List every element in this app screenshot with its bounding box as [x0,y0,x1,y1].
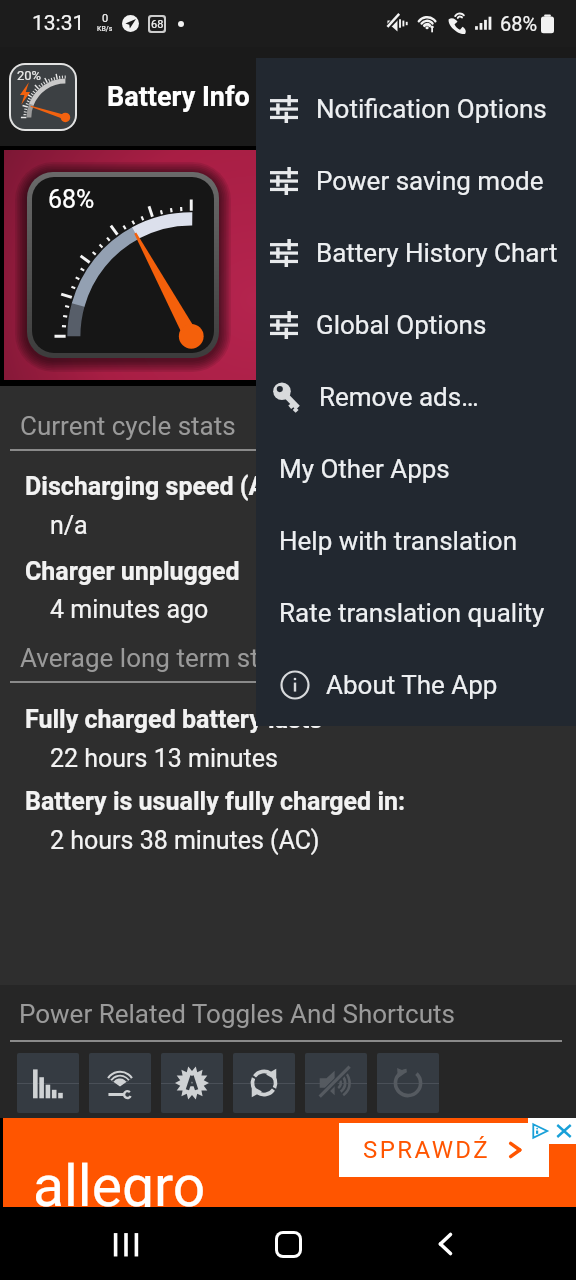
staticText: Charger unplugged [25,557,240,586]
staticText: My Other Apps [279,454,450,484]
staticText: 68% [500,12,538,35]
button[interactable]: Auto brightness [161,1053,223,1113]
button[interactable]: Current cycle stats [0,411,576,463]
button[interactable]: About The App [256,649,576,721]
button[interactable]: Notification Options [256,73,576,145]
staticText: Rate translation quality [279,598,545,628]
staticText: Power saving mode [316,166,544,196]
button[interactable]: Rotation [377,1053,439,1113]
button[interactable]: Battery stats [17,1053,79,1113]
button[interactable]: Help with translation [256,505,576,577]
staticText: Current cycle stats [20,411,236,441]
button[interactable]: Discharging speed (Average) [0,472,576,544]
staticText: Battery Info [107,81,250,113]
staticText: n/a [50,511,88,540]
staticText: 68 [151,18,164,31]
button[interactable]: Home [252,1208,324,1280]
button[interactable]: Back [410,1208,482,1280]
staticText: Power Related Toggles And Shortcuts [19,999,455,1029]
button[interactable]: allegro [3,1118,576,1208]
button[interactable]: Global Options [256,289,576,361]
button[interactable]: Recents [90,1208,162,1280]
button[interactable]: Battery is usually fully charged in: [0,787,576,859]
button[interactable]: Charger unplugged [0,557,576,629]
staticText: 13:31 [32,11,85,36]
staticText: Global Options [316,310,487,340]
button[interactable]: Power saving mode [256,145,576,217]
staticText: Notification Options [316,94,547,124]
staticText: About The App [326,670,498,700]
staticText: Fully charged battery lasts [25,705,323,734]
staticText: 22 hours 13 minutes [50,744,278,773]
button[interactable]: Sound [305,1053,367,1113]
staticText: 2 hours 38 minutes (AC) [50,826,320,855]
button[interactable]: Battery History Chart [256,217,576,289]
staticText: 0 [102,12,109,25]
staticText: SPRAWDŹ [363,1136,490,1164]
staticText: Battery History Chart [316,238,558,268]
staticText: Discharging speed (Average) [25,472,350,501]
button[interactable]: Rate translation quality [256,577,576,649]
button[interactable]: Average long term stats [0,643,576,695]
staticText: allegro [33,1153,206,1220]
staticText: 4 minutes ago [50,595,209,624]
staticText: Average long term stats [20,643,295,673]
button[interactable]: Fully charged battery lasts [0,705,576,777]
staticText: Battery is usually fully charged in: [25,787,406,816]
button[interactable]: My Other Apps [256,433,576,505]
staticText: Remove ads… [319,382,479,412]
staticText: 20% [17,68,42,83]
staticText: Help with translation [279,526,518,556]
button[interactable]: Wi-Fi [89,1053,151,1113]
button[interactable]: Sync [233,1053,295,1113]
staticText: KB/s [97,25,113,33]
staticText: 68% [48,185,95,214]
button[interactable]: Remove ads… [256,361,576,433]
